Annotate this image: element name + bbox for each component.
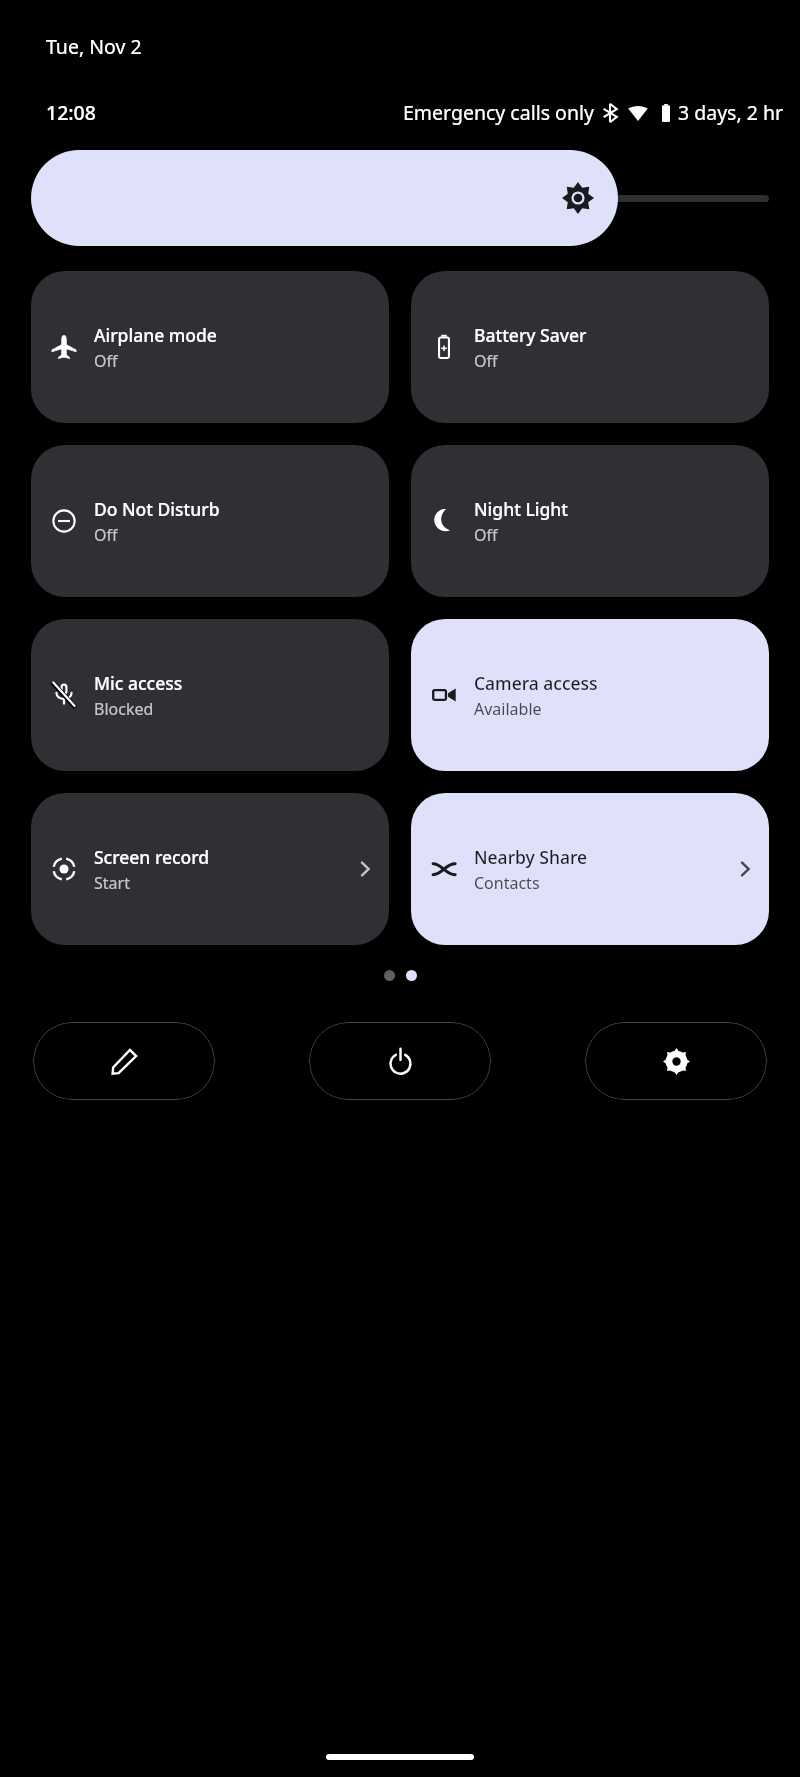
button[interactable]: Airplane mode <box>31 271 389 423</box>
button[interactable]: Camera access <box>411 619 769 771</box>
button[interactable]: Brightness <box>31 150 618 246</box>
staticText: Off <box>94 350 118 372</box>
button[interactable]: Nearby Share <box>411 793 769 945</box>
staticText: Blocked <box>94 698 154 720</box>
staticText: Do Not Disturb <box>94 497 220 521</box>
staticText: Airplane mode <box>94 323 217 347</box>
staticText: Battery Saver <box>474 323 587 347</box>
staticText: 3 days, 2 hr <box>678 99 784 126</box>
staticText: Tue, Nov 2 <box>46 33 142 60</box>
staticText: Screen record <box>94 845 210 869</box>
staticText: Emergency calls only <box>403 99 594 126</box>
button[interactable]: Settings <box>585 1022 767 1100</box>
staticText: Off <box>474 350 498 372</box>
button[interactable]: Edit <box>33 1022 215 1100</box>
button[interactable]: Battery Saver <box>411 271 769 423</box>
staticText: Nearby Share <box>474 845 588 869</box>
button[interactable]: Do Not Disturb <box>31 445 389 597</box>
staticText: Mic access <box>94 671 183 695</box>
staticText: Off <box>474 524 498 546</box>
button[interactable]: Power <box>309 1022 491 1100</box>
button[interactable]: Mic access <box>31 619 389 771</box>
button[interactable]: Night Light <box>411 445 769 597</box>
staticText: Night Light <box>474 497 568 521</box>
staticText: Start <box>94 872 130 894</box>
staticText: 12:08 <box>46 99 96 126</box>
staticText: Available <box>474 698 542 720</box>
staticText: Camera access <box>474 671 598 695</box>
button[interactable]: Screen record <box>31 793 389 945</box>
staticText: Off <box>94 524 118 546</box>
staticText: Contacts <box>474 872 540 894</box>
